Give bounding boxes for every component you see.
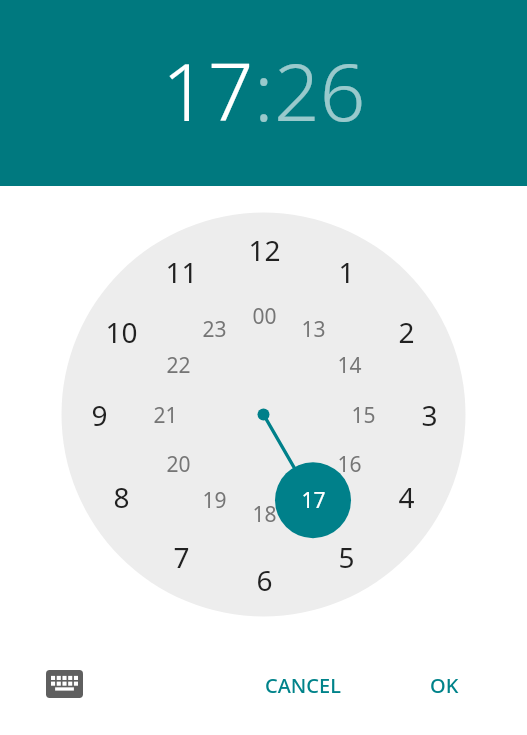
button[interactable]: 11 — [153, 252, 209, 292]
staticText: 17 — [162, 35, 254, 144]
staticText: 17 — [301, 486, 326, 515]
button[interactable]: 00 — [236, 296, 292, 336]
staticText: 12 — [248, 231, 281, 269]
button[interactable]: 6 — [236, 560, 292, 600]
staticText: 18 — [252, 500, 277, 529]
staticText: 13 — [301, 315, 326, 344]
staticText: 6 — [256, 561, 273, 599]
staticText: 00 — [252, 302, 277, 331]
button[interactable]: 4 — [378, 477, 434, 517]
button[interactable]: 10 — [93, 312, 149, 352]
staticText: 9 — [91, 396, 108, 434]
staticText: 3 — [421, 396, 438, 434]
button[interactable]: Switch to text input — [42, 664, 86, 704]
button[interactable]: 17 — [285, 480, 341, 520]
staticText: OK — [430, 672, 459, 699]
button[interactable]: 26 — [274, 35, 366, 144]
button[interactable]: 3 — [401, 395, 457, 435]
button[interactable]: 15 — [335, 395, 391, 435]
staticText: 19 — [202, 486, 227, 515]
staticText: 20 — [166, 450, 191, 479]
button[interactable]: 8 — [93, 477, 149, 517]
button[interactable]: 20 — [150, 444, 206, 484]
staticText: 5 — [338, 538, 355, 576]
staticText: 26 — [274, 35, 366, 144]
button[interactable]: 14 — [321, 345, 377, 385]
button[interactable]: 13 — [285, 309, 341, 349]
staticText: 15 — [351, 401, 376, 430]
button[interactable]: 12 — [236, 230, 292, 270]
button[interactable]: 16 — [321, 444, 377, 484]
button[interactable]: 23 — [186, 309, 242, 349]
button[interactable]: OK — [418, 662, 471, 709]
button[interactable]: 7 — [153, 537, 209, 577]
staticText: 4 — [398, 478, 415, 516]
staticText: CANCEL — [265, 672, 341, 699]
staticText: 2 — [398, 313, 415, 351]
button[interactable]: 21 — [137, 395, 193, 435]
button[interactable]: 19 — [186, 480, 242, 520]
button[interactable]: 9 — [71, 395, 127, 435]
button[interactable]: 22 — [150, 345, 206, 385]
staticText: 22 — [166, 351, 191, 380]
staticText: 1 — [338, 253, 355, 291]
staticText: 14 — [337, 351, 362, 380]
button[interactable]: 18 — [236, 494, 292, 534]
staticText: 11 — [165, 253, 198, 291]
staticText: 7 — [173, 538, 190, 576]
staticText: 16 — [337, 450, 362, 479]
staticText: 8 — [113, 478, 130, 516]
button[interactable]: 1 — [318, 252, 374, 292]
button[interactable]: 2 — [378, 312, 434, 352]
staticText: 21 — [153, 401, 178, 430]
staticText: : — [254, 35, 274, 144]
staticText: 23 — [202, 315, 227, 344]
staticText: 10 — [105, 313, 138, 351]
button[interactable]: 5 — [318, 537, 374, 577]
button[interactable]: 17 — [162, 35, 254, 144]
button[interactable]: CANCEL — [253, 662, 353, 709]
